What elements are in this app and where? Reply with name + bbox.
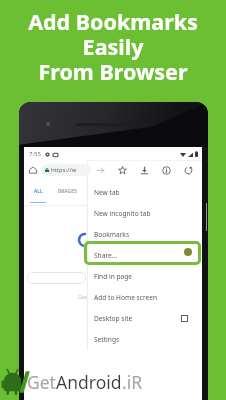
button[interactable]: Download xyxy=(137,163,151,177)
staticText: Goo xyxy=(78,294,88,301)
button[interactable]: https://w xyxy=(41,164,91,176)
staticText: Settings xyxy=(94,335,120,344)
button[interactable]: Forward xyxy=(93,163,107,177)
staticText: .iR xyxy=(122,370,143,394)
button[interactable]: Page info xyxy=(159,163,173,177)
staticText: New incognito tab xyxy=(94,209,151,218)
staticText: 7:55 xyxy=(29,150,41,158)
staticText: Android xyxy=(56,370,122,394)
button[interactable]: Settings xyxy=(87,329,202,350)
staticText: https://w xyxy=(51,166,77,174)
staticText: Share... xyxy=(94,251,118,260)
staticText: ALL xyxy=(34,188,43,195)
staticText: Bookmarks xyxy=(94,230,130,239)
button[interactable]: Bookmark xyxy=(115,163,129,177)
staticText: Find in page xyxy=(94,272,132,281)
staticText: Add Bookmarks Easily From Browser xyxy=(0,7,226,86)
staticText: IMAGES xyxy=(58,188,77,195)
staticText: New tab xyxy=(94,188,120,197)
button[interactable]: New tab xyxy=(87,182,202,203)
button[interactable]: Share... xyxy=(87,245,202,266)
button[interactable]: Home xyxy=(27,164,39,176)
button[interactable]: ALL xyxy=(33,188,44,195)
button[interactable]: Bookmarks xyxy=(87,224,202,245)
button[interactable]: Reload xyxy=(181,163,195,177)
staticText: Desktop site xyxy=(94,314,133,323)
button[interactable]: Find in page xyxy=(87,266,202,287)
staticText: Add to Home screen xyxy=(94,293,158,302)
button[interactable]: New incognito tab xyxy=(87,203,202,224)
button[interactable]: Add to Home screen xyxy=(87,287,202,308)
button[interactable] xyxy=(27,272,86,284)
button[interactable]: Desktop site xyxy=(87,308,202,329)
staticText: Get xyxy=(27,370,56,394)
button[interactable]: IMAGES xyxy=(57,188,78,195)
